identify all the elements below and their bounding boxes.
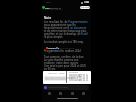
button[interactable]: Profile — [79, 91, 88, 96]
staticText: Une mise a jour pour 2024 et 2025 — [44, 64, 86, 68]
button[interactable]: Liste 2024 Valeur — [43, 71, 91, 84]
staticText: specifiee, et sur le develop. de l'outil — [44, 32, 88, 36]
staticText: Ecrire un message — [48, 86, 68, 89]
staticText: sur liste — [44, 52, 52, 55]
staticText: financierement verif. un document — [44, 26, 87, 30]
staticText: Programmes fin. realises 2024 — [44, 49, 81, 53]
staticText: nous apparaissent que les — [44, 23, 76, 27]
staticText: Liste 2024 Valeur — [48, 72, 65, 75]
button[interactable] — [45, 46, 89, 50]
staticText: Le resultat complet est 180 emp. — [44, 40, 84, 44]
button[interactable] — [42, 5, 79, 11]
staticText: Tresor360 — [48, 47, 60, 50]
button[interactable]: Home — [45, 91, 54, 96]
staticText: en 60 sec. — [44, 67, 57, 71]
staticText: 58 91 73 24 66 47 80 — [83, 73, 86, 82]
staticText: Sommaire — [69, 71, 79, 74]
staticText: Resultats nets Marge brute Charges fixes… — [69, 73, 82, 82]
staticText: Les chiffres officiels du mois sont conf… — [45, 76, 75, 81]
staticText: et de cette maniere beaucoup plus — [44, 29, 87, 33]
staticText: La suite marche comme une — [44, 58, 79, 62]
staticText: un grand fichier — [59, 47, 75, 50]
staticText: Ans Bureau IA — [45, 6, 62, 9]
staticText: 21 35 19 48 52 17 93 — [86, 73, 89, 82]
staticText: 9:41 — [46, 0, 51, 3]
staticText: evidence, notre dem. succes — [44, 61, 79, 65]
staticText: Tout compris, confirm. de la don. — [44, 55, 85, 59]
button[interactable]: Partager — [80, 6, 90, 9]
staticText: le plus complet. — [44, 35, 64, 39]
button[interactable]: Discover — [68, 91, 77, 96]
staticText: Les resultats fin. de Programmation — [44, 20, 88, 24]
button[interactable]: Ecrire un message — [43, 85, 89, 90]
staticText: Reponses verifiees — [45, 8, 63, 11]
staticText: Note — [44, 16, 52, 20]
staticText: Partager — [81, 6, 90, 9]
button[interactable]: Search — [56, 91, 65, 96]
staticText: 142 318 255 194 470 132 866 — [79, 73, 83, 82]
